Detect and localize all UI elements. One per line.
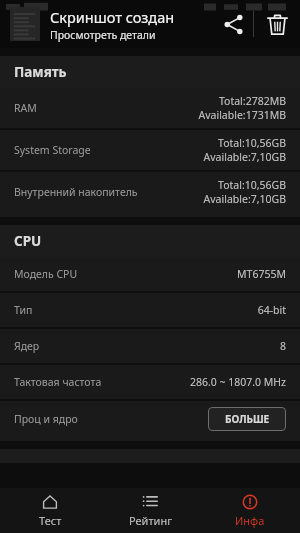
button[interactable]: Инфа bbox=[200, 488, 300, 533]
button[interactable]: Внутренний накопитель bbox=[0, 172, 300, 212]
staticText: Внутренний накопитель bbox=[14, 185, 203, 199]
staticText: Тест bbox=[39, 513, 62, 528]
button[interactable]: Ядер bbox=[0, 329, 300, 363]
staticText: Total:10,56GB bbox=[218, 136, 286, 150]
staticText: Скриншот создан bbox=[50, 7, 175, 27]
staticText: 286.0 ~ 1807.0 MHz bbox=[189, 375, 286, 389]
staticText: Ядер bbox=[14, 339, 279, 353]
button[interactable]: Модель CPU bbox=[0, 257, 300, 291]
button[interactable]: System Storage bbox=[0, 130, 300, 170]
button[interactable]: Рейтинг bbox=[100, 488, 200, 533]
staticText: БОЛЬШЕ bbox=[225, 412, 270, 426]
staticText: RAM bbox=[14, 101, 198, 115]
staticText: Тактовая частота bbox=[14, 375, 189, 389]
button[interactable]: Тест bbox=[0, 488, 100, 533]
staticText: Инфа bbox=[235, 513, 265, 528]
staticText: Available:7,10GB bbox=[203, 150, 286, 164]
button[interactable]: БОЛЬШЕ bbox=[208, 407, 286, 431]
staticText: 64-bit bbox=[257, 303, 286, 317]
staticText: 8 bbox=[279, 339, 286, 353]
staticText: Available:1731MB bbox=[198, 108, 286, 122]
staticText: Рейтинг bbox=[129, 513, 172, 528]
staticText: Просмотреть детали bbox=[50, 28, 156, 42]
staticText: Available:7,10GB bbox=[203, 192, 286, 206]
staticText: System Storage bbox=[14, 143, 203, 157]
staticText: Тип bbox=[14, 303, 257, 317]
staticText: CPU bbox=[14, 232, 42, 250]
staticText: Total:2782MB bbox=[218, 94, 286, 108]
staticText: Память bbox=[14, 63, 67, 81]
button[interactable]: Delete bbox=[254, 1, 300, 47]
staticText: Модель CPU bbox=[14, 267, 237, 281]
staticText: Проц и ядро bbox=[14, 412, 208, 426]
button[interactable]: Тип bbox=[0, 293, 300, 327]
button[interactable]: Тактовая частота bbox=[0, 365, 300, 399]
button[interactable]: RAM bbox=[0, 88, 300, 128]
staticText: MT6755M bbox=[237, 267, 286, 281]
staticText: Total:10,56GB bbox=[218, 178, 286, 192]
button[interactable]: Share bbox=[213, 4, 253, 44]
